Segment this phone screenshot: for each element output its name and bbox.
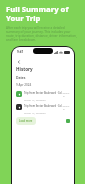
button[interactable]: Load more (16, 117, 36, 125)
staticText: Dates (16, 75, 26, 80)
staticText: History (16, 66, 33, 72)
staticText: Sector 14, Gurgaon (24, 111, 46, 114)
staticText: After each trip you will receive a detai… (6, 26, 78, 42)
button[interactable]: Open map (66, 119, 70, 123)
staticText: 9 Apr 2024 (16, 83, 32, 87)
button[interactable]: Trip from Sector Boulevard · Col. (16, 91, 70, 101)
staticText: Trip from Sector Boulevard · Col. (24, 91, 63, 94)
staticText: Full Summary of Your Trip (6, 4, 78, 23)
button[interactable]: Trip from Sector Boulevard · Col. (16, 104, 70, 114)
staticText: Load more (19, 119, 33, 123)
staticText: Sector 14, Gurgaon (24, 98, 46, 101)
staticText: Pickup (63, 104, 70, 110)
staticText: Pickup (63, 91, 70, 97)
staticText: Trip from Sector Boulevard · Col. (24, 104, 63, 107)
button[interactable]: Back (15, 58, 22, 65)
staticText: 9:41 (17, 50, 24, 54)
